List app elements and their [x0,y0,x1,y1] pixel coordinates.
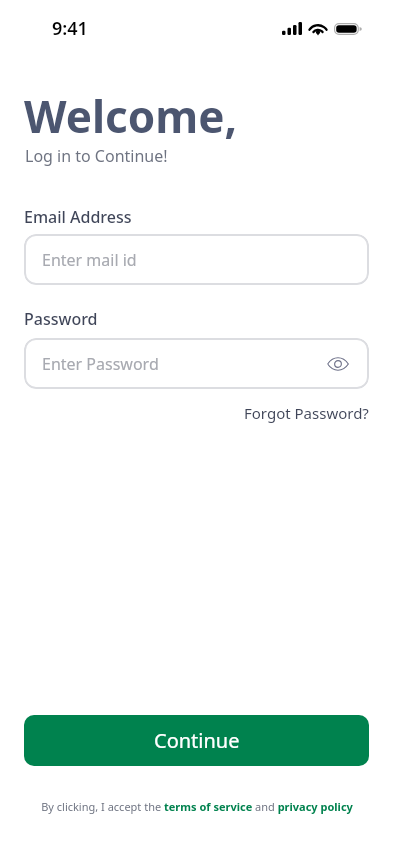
staticText: Continue [154,727,240,754]
staticText: By clicking, I accept the terms of servi… [41,799,353,814]
staticText: Enter Password [42,353,159,375]
staticText: Enter mail id [42,249,137,271]
button[interactable]: Show password [325,351,351,377]
staticText: Log in to Continue! [25,145,168,167]
staticText: Welcome, [24,86,237,146]
staticText: Email Address [24,206,132,228]
staticText: Password [24,308,98,330]
button[interactable]: Continue [24,715,369,766]
staticText: 9:41 [52,16,88,41]
button[interactable]: By clicking, I accept the terms of servi… [31,795,363,818]
button[interactable]: Forgot Password? [240,395,373,431]
staticText: Forgot Password? [244,403,369,423]
button[interactable]: Enter mail id [24,234,369,285]
button[interactable]: Enter Password [24,338,369,389]
